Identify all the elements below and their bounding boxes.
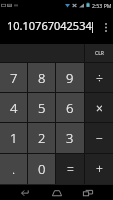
- staticText: 9: [66, 69, 74, 87]
- button[interactable]: ×: [85, 93, 113, 122]
- button[interactable]: 4: [0, 93, 27, 122]
- button[interactable]: Back: [9, 185, 41, 200]
- staticText: CLR: [95, 50, 104, 57]
- button[interactable]: 9: [56, 63, 84, 92]
- staticText: 2:53 PM: [92, 2, 112, 9]
- button[interactable]: CLR: [85, 44, 113, 62]
- staticText: =: [67, 161, 74, 177]
- staticText: 1: [10, 129, 18, 147]
- staticText: .: [12, 160, 16, 178]
- staticText: 6: [66, 99, 74, 117]
- staticText: ×: [96, 100, 103, 116]
- staticText: 7: [10, 69, 18, 87]
- button[interactable]: 6: [56, 93, 84, 122]
- button[interactable]: +: [85, 154, 113, 184]
- button[interactable]: 8: [28, 63, 55, 92]
- staticText: 5: [38, 99, 46, 117]
- button[interactable]: Home: [41, 185, 73, 200]
- staticText: 3: [66, 129, 74, 147]
- button[interactable]: 0: [28, 154, 55, 184]
- button[interactable]: .: [0, 154, 27, 184]
- button[interactable]: Recents: [72, 185, 104, 200]
- button[interactable]: 1: [0, 123, 27, 153]
- staticText: 4: [10, 99, 18, 117]
- staticText: 0: [38, 160, 46, 178]
- button[interactable]: 2: [28, 123, 55, 153]
- staticText: 8: [38, 69, 46, 87]
- button[interactable]: 5: [28, 93, 55, 122]
- button[interactable]: More options: [99, 16, 113, 38]
- staticText: −: [96, 130, 103, 146]
- button[interactable]: 3: [56, 123, 84, 153]
- staticText: 2: [38, 129, 46, 147]
- button[interactable]: −: [85, 123, 113, 153]
- button[interactable]: 7: [0, 63, 27, 92]
- button[interactable]: ÷: [85, 63, 113, 92]
- staticText: +: [96, 161, 103, 177]
- staticText: ÷: [96, 70, 103, 86]
- button[interactable]: =: [56, 154, 84, 184]
- staticText: 10.10767042534: [7, 18, 92, 33]
